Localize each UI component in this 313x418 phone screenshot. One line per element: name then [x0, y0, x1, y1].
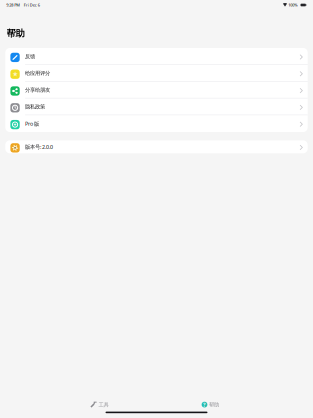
staticText: Pro 版	[25, 120, 39, 127]
staticText: 版本号: 2.0.0	[25, 143, 53, 150]
staticText: 9:28 PM	[6, 2, 20, 8]
button[interactable]: 工具	[86, 399, 112, 411]
staticText: 分享给朋友	[25, 87, 50, 93]
staticText: Fri Dec 6	[24, 2, 40, 8]
staticText: 100%	[288, 2, 297, 8]
staticText: 给应用评分	[25, 70, 50, 76]
staticText: 帮助	[7, 28, 25, 39]
staticText: 反馈	[25, 53, 35, 60]
button[interactable]: 版本号: 2.0.0	[5, 140, 308, 153]
button[interactable]: ?	[197, 399, 223, 411]
staticText: 隐私政策	[25, 103, 45, 110]
button[interactable]: 隐私政策	[5, 98, 308, 115]
button[interactable]: Pro 版	[5, 115, 308, 132]
button[interactable]: 给应用评分	[5, 65, 308, 82]
staticText: 工具	[98, 401, 108, 408]
button[interactable]: 分享给朋友	[5, 82, 308, 98]
staticText: ?	[203, 401, 206, 408]
staticText: 帮助	[209, 401, 219, 408]
button[interactable]: 反馈	[5, 48, 308, 65]
